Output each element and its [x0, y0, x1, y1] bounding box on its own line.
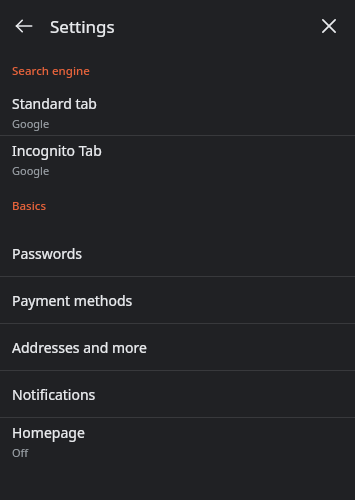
button[interactable]: Notifications: [0, 371, 355, 417]
staticText: Notifications: [12, 385, 96, 404]
button[interactable]: Homepage: [0, 418, 355, 464]
button[interactable]: Addresses and more: [0, 324, 355, 370]
staticText: Addresses and more: [12, 338, 147, 357]
staticText: Passwords: [12, 244, 83, 263]
staticText: Google: [12, 163, 50, 178]
staticText: Search engine: [12, 63, 90, 79]
button[interactable]: Incognito Tab: [0, 136, 355, 182]
button[interactable]: Passwords: [0, 230, 355, 276]
staticText: Settings: [50, 15, 115, 38]
staticText: Homepage: [12, 423, 85, 442]
button[interactable]: Payment methods: [0, 277, 355, 323]
staticText: Incognito Tab: [12, 141, 102, 160]
staticText: Basics: [12, 198, 47, 214]
button[interactable]: Close: [313, 10, 345, 42]
button[interactable]: Back: [8, 10, 40, 42]
staticText: Off: [12, 445, 29, 460]
staticText: Google: [12, 116, 50, 131]
staticText: Payment methods: [12, 291, 133, 310]
button[interactable]: Standard tab: [0, 90, 355, 135]
staticText: Standard tab: [12, 94, 97, 113]
